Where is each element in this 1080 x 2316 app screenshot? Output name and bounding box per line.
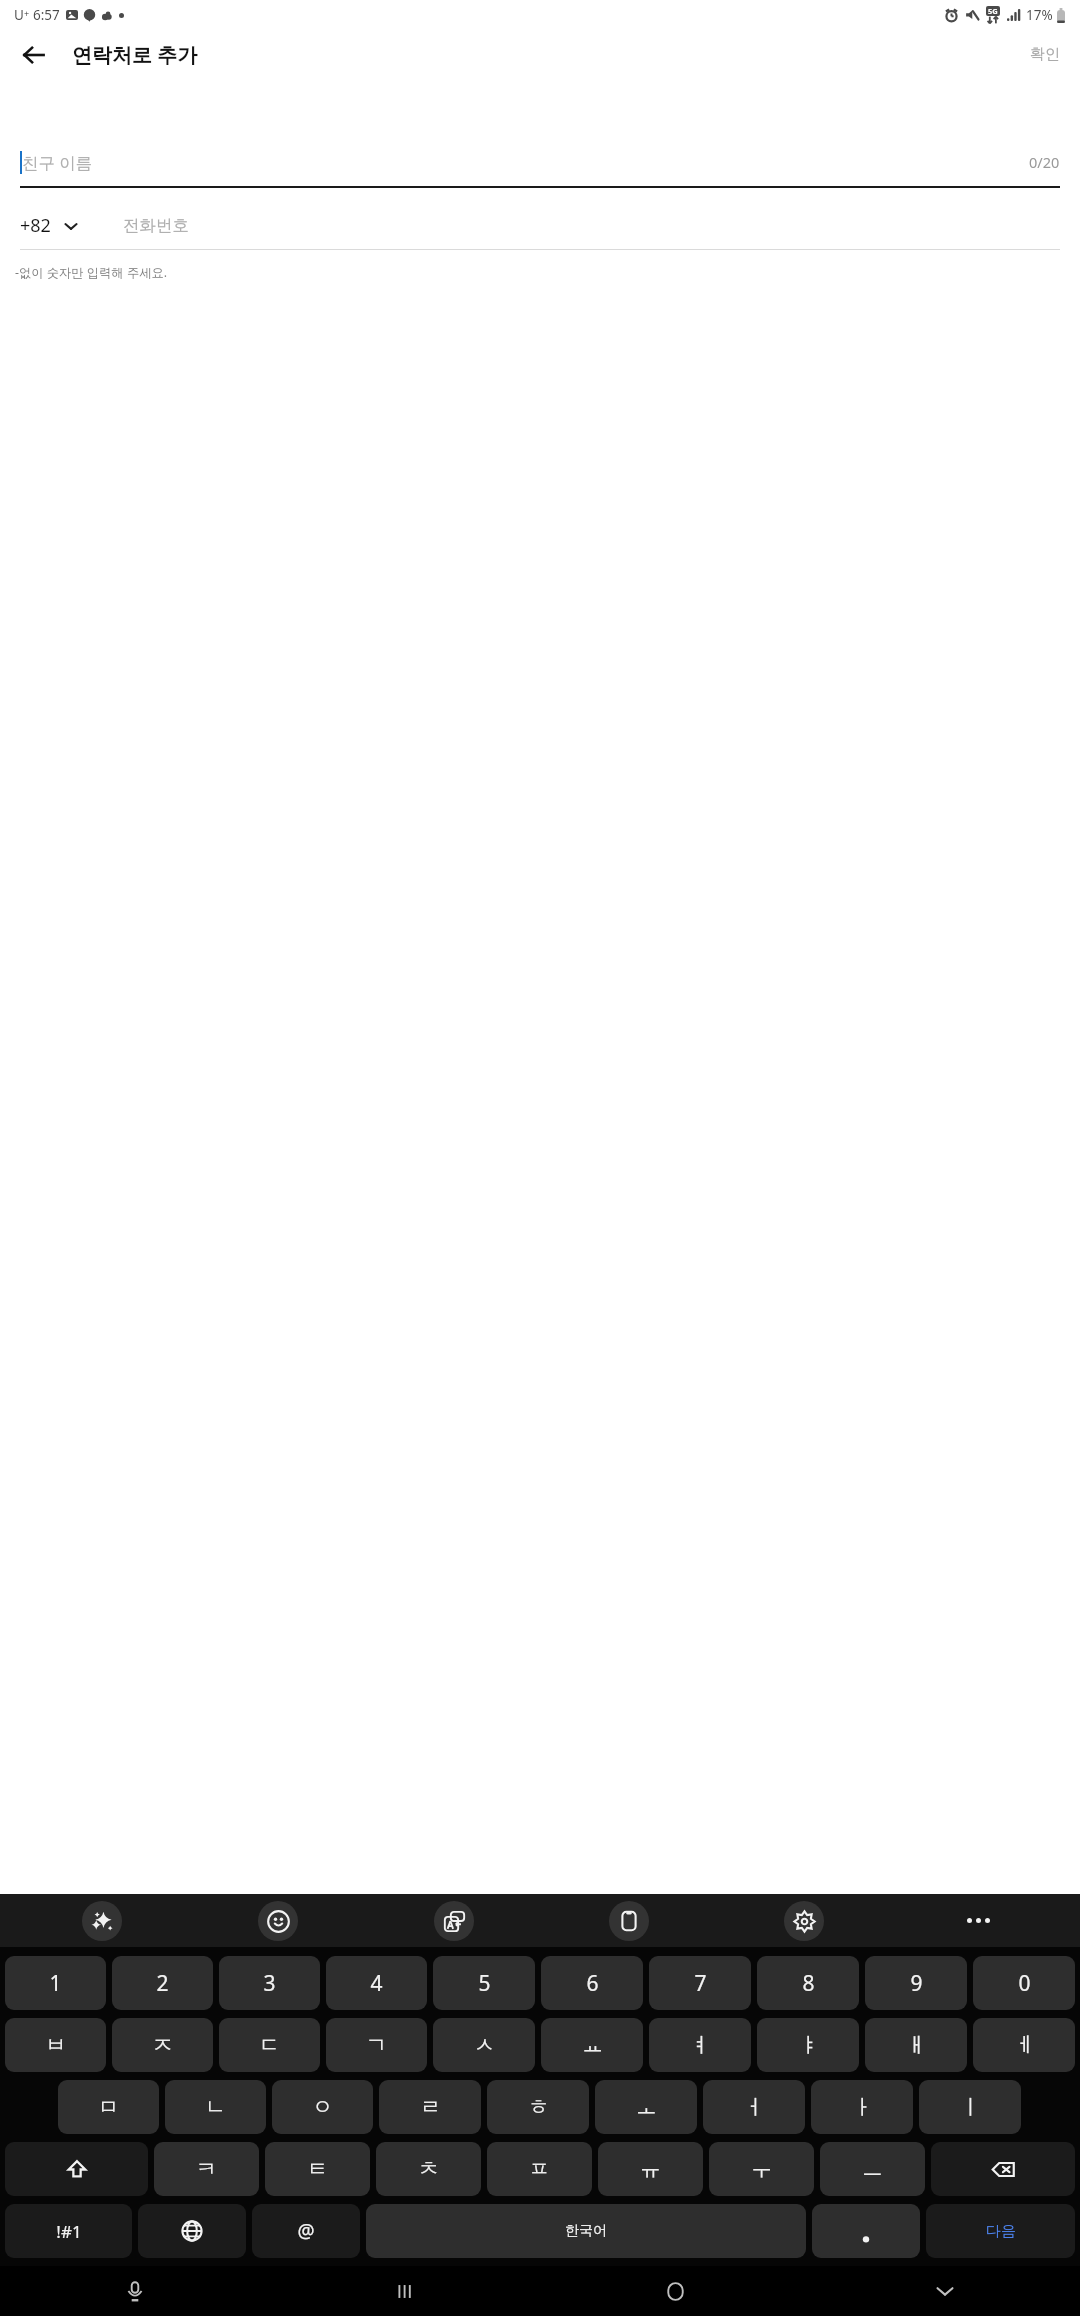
button[interactable]: 친구 이름 bbox=[20, 144, 1060, 188]
button[interactable]: @ bbox=[252, 2204, 360, 2258]
button[interactable]: !#1 bbox=[5, 2204, 132, 2258]
staticText: + bbox=[24, 7, 30, 19]
button[interactable]: Change language bbox=[138, 2204, 246, 2258]
staticText: ㄱ bbox=[366, 2032, 387, 2058]
staticText: 9 bbox=[910, 1969, 923, 1998]
button[interactable]: 2 bbox=[112, 1956, 213, 2010]
button[interactable]: Clipboard bbox=[541, 1894, 716, 1947]
staticText: ㅈ bbox=[152, 2032, 173, 2058]
button[interactable]: 4 bbox=[326, 1956, 427, 2010]
button[interactable]: ㅋ bbox=[154, 2142, 259, 2196]
staticText: 친구 이름 bbox=[22, 151, 93, 174]
staticText: 6 bbox=[586, 1969, 599, 1998]
button[interactable]: ㅡ bbox=[820, 2142, 925, 2196]
button[interactable]: 5 bbox=[433, 1956, 535, 2010]
button[interactable]: Recent apps bbox=[270, 2266, 540, 2316]
button[interactable]: Home bbox=[540, 2266, 810, 2316]
button[interactable]: Voice input bbox=[0, 2266, 270, 2316]
button[interactable]: ㅇ bbox=[272, 2080, 373, 2134]
button[interactable]: ㅜ bbox=[709, 2142, 814, 2196]
staticText: ㅓ bbox=[744, 2094, 765, 2120]
button[interactable]: Back bbox=[14, 35, 54, 75]
staticText: 17% bbox=[1026, 6, 1053, 24]
staticText: 다음 bbox=[986, 2222, 1016, 2241]
staticText: ㅊ bbox=[418, 2156, 439, 2182]
button[interactable]: ㅁ bbox=[58, 2080, 159, 2134]
staticText: ㅏ bbox=[852, 2094, 873, 2120]
staticText: 0 bbox=[1018, 1969, 1031, 1998]
button[interactable]: ㅈ bbox=[112, 2018, 213, 2072]
button[interactable]: ㅂ bbox=[5, 2018, 106, 2072]
staticText: 6:57 bbox=[33, 6, 60, 24]
button[interactable]: AI suggestions bbox=[14, 1894, 190, 1947]
staticText: 1 bbox=[49, 1969, 62, 1998]
staticText: ㅔ bbox=[1014, 2032, 1035, 2058]
staticText: 5 bbox=[478, 1969, 491, 1998]
button[interactable]: Emoji bbox=[190, 1894, 366, 1947]
button[interactable]: 6 bbox=[541, 1956, 643, 2010]
staticText: 8 bbox=[802, 1969, 815, 1998]
button[interactable]: 1 bbox=[5, 1956, 106, 2010]
staticText: ㅎ bbox=[528, 2094, 549, 2120]
button[interactable]: More options bbox=[891, 1894, 1066, 1947]
button[interactable]: Translate bbox=[366, 1894, 541, 1947]
button[interactable]: 0 bbox=[973, 1956, 1075, 2010]
staticText: -없이 숫자만 입력해 주세요. bbox=[15, 264, 168, 281]
staticText: ㅕ bbox=[690, 2032, 711, 2058]
button[interactable]: ㄷ bbox=[219, 2018, 320, 2072]
button[interactable]: ㅅ bbox=[433, 2018, 535, 2072]
staticText: 7 bbox=[694, 1969, 707, 1998]
staticText: ㅁ bbox=[98, 2094, 119, 2120]
staticText: U bbox=[14, 6, 24, 24]
button[interactable]: Hide keyboard bbox=[810, 2266, 1080, 2316]
staticText: 확인 bbox=[1030, 45, 1060, 64]
button[interactable]: ㅌ bbox=[265, 2142, 370, 2196]
button[interactable]: 3 bbox=[219, 1956, 320, 2010]
staticText: ㅑ bbox=[798, 2032, 819, 2058]
button[interactable]: 9 bbox=[865, 1956, 967, 2010]
button[interactable]: ㅠ bbox=[598, 2142, 703, 2196]
button[interactable]: ㄱ bbox=[326, 2018, 427, 2072]
staticText: ㅣ bbox=[960, 2094, 981, 2120]
staticText: @ bbox=[297, 2218, 315, 2244]
staticText: ㅡ bbox=[862, 2156, 883, 2182]
button[interactable]: ㅐ bbox=[865, 2018, 967, 2072]
button[interactable]: Shift bbox=[5, 2142, 148, 2196]
staticText: ㅜ bbox=[751, 2156, 772, 2182]
button[interactable]: ㅏ bbox=[811, 2080, 913, 2134]
button[interactable]: ㅍ bbox=[487, 2142, 592, 2196]
button[interactable]: ㅔ bbox=[973, 2018, 1075, 2072]
staticText: ㅛ bbox=[582, 2032, 603, 2058]
button[interactable]: ㅊ bbox=[376, 2142, 481, 2196]
staticText: !#1 bbox=[56, 2220, 82, 2243]
button[interactable]: ㅛ bbox=[541, 2018, 643, 2072]
button[interactable]: ㄹ bbox=[379, 2080, 481, 2134]
button[interactable]: +82 bbox=[20, 213, 83, 238]
button[interactable]: 한국어 bbox=[366, 2204, 806, 2258]
button[interactable]: Period bbox=[812, 2204, 920, 2258]
button[interactable]: ㄴ bbox=[165, 2080, 266, 2134]
button[interactable]: 다음 bbox=[926, 2204, 1075, 2258]
button[interactable]: ㅎ bbox=[487, 2080, 589, 2134]
staticText: 한국어 bbox=[565, 2222, 607, 2240]
staticText: 4 bbox=[370, 1969, 383, 1998]
button[interactable]: 8 bbox=[757, 1956, 859, 2010]
staticText: ㅠ bbox=[640, 2156, 661, 2182]
staticText: ㅅ bbox=[474, 2032, 495, 2058]
button[interactable]: Backspace bbox=[931, 2142, 1075, 2196]
staticText: ㅍ bbox=[529, 2156, 550, 2182]
button[interactable]: 전화번호 bbox=[123, 204, 1060, 246]
staticText: ㅋ bbox=[196, 2156, 217, 2182]
button[interactable]: Settings bbox=[716, 1894, 891, 1947]
button[interactable]: ㅓ bbox=[703, 2080, 805, 2134]
button[interactable]: 확인 bbox=[1020, 37, 1070, 72]
button[interactable]: ㅑ bbox=[757, 2018, 859, 2072]
staticText: 전화번호 bbox=[123, 215, 189, 236]
staticText: ㅐ bbox=[906, 2032, 927, 2058]
button[interactable]: 7 bbox=[649, 1956, 751, 2010]
staticText: ㅌ bbox=[307, 2156, 328, 2182]
button[interactable]: ㅗ bbox=[595, 2080, 697, 2134]
staticText: 3 bbox=[263, 1969, 276, 1998]
button[interactable]: ㅣ bbox=[919, 2080, 1021, 2134]
button[interactable]: ㅕ bbox=[649, 2018, 751, 2072]
